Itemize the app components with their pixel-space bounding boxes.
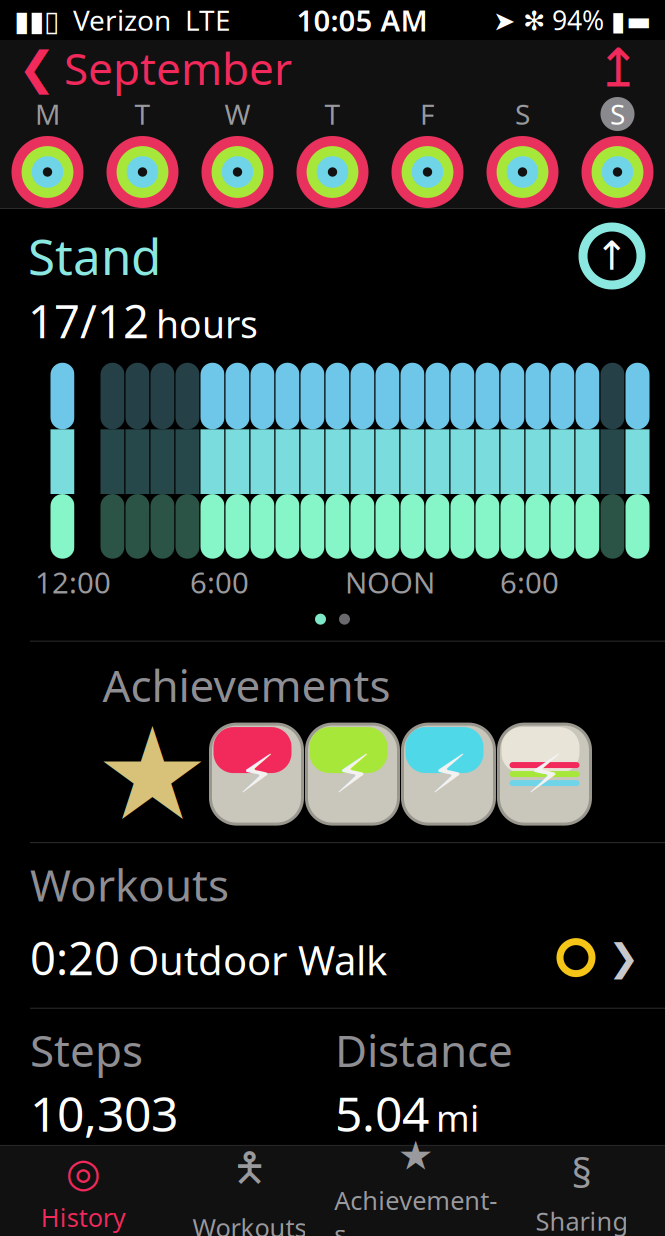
staticText: ➤ ✻ 94% ▮▬ (493, 2, 651, 38)
button[interactable]: ❮ (0, 33, 292, 103)
staticText: 6:00 (190, 563, 249, 602)
staticText: Achievements (334, 1183, 497, 1236)
button[interactable]: T (285, 92, 380, 212)
button[interactable]: § (499, 1136, 665, 1236)
staticText: Distance (335, 1021, 513, 1079)
button[interactable]: S (475, 92, 570, 212)
staticText: ⚡︎ (430, 744, 467, 804)
staticText: Outdoor Walk (128, 933, 387, 986)
staticText: ★ (398, 1133, 434, 1178)
staticText: 17/12 (28, 290, 149, 351)
staticText: ↑ (595, 233, 629, 279)
button[interactable]: Perfect week achievement (496, 722, 592, 826)
button[interactable]: Share (596, 34, 665, 102)
staticText: Steps (30, 1021, 143, 1079)
staticText: Achievements (102, 656, 390, 714)
button[interactable]: W (190, 92, 285, 212)
staticText: S (515, 95, 530, 133)
staticText: W (224, 95, 250, 133)
staticText: 10,303 (30, 1081, 178, 1145)
button[interactable]: ★ (332, 1123, 499, 1236)
staticText: History (41, 1200, 126, 1234)
button[interactable]: T (95, 92, 190, 212)
button[interactable]: ◎ (0, 1140, 166, 1236)
staticText: 12:00 (35, 563, 111, 602)
staticText: 10:05 AM (296, 0, 427, 39)
staticText: M (35, 95, 60, 133)
staticText: 5.04 (335, 1081, 429, 1145)
button[interactable]: 🯅 (166, 1129, 332, 1236)
staticText: ❯ (608, 936, 639, 979)
button[interactable]: Star achievement (96, 722, 208, 826)
button[interactable]: F (380, 92, 475, 212)
staticText: ↥ (596, 38, 641, 98)
staticText: ★ (95, 701, 210, 847)
staticText: ◎ (66, 1150, 101, 1195)
staticText: § (571, 1146, 592, 1199)
staticText: ▮▮▯ Verizon LTE (14, 1, 231, 39)
staticText: Workouts (192, 1211, 306, 1236)
staticText: T (324, 95, 340, 133)
button[interactable]: 0:20 (0, 913, 665, 1002)
staticText: hours (156, 299, 258, 348)
staticText: September (64, 39, 292, 97)
staticText: Sharing (535, 1204, 628, 1236)
button[interactable]: Exercise goal achievement (304, 722, 400, 826)
button[interactable]: S (570, 92, 665, 212)
staticText: ⚡︎ (526, 744, 563, 804)
staticText: Stand (28, 223, 161, 288)
staticText: ❮ (18, 42, 56, 94)
staticText: mi (436, 1094, 479, 1142)
button[interactable]: Stand goal achievement (400, 722, 496, 826)
staticText: ⚡︎ (334, 744, 371, 804)
staticText: T (134, 95, 150, 133)
staticText: 🯅 (232, 1139, 267, 1206)
staticText: 0:20 (30, 927, 120, 988)
button[interactable]: M (0, 92, 95, 212)
staticText: NOON (345, 563, 435, 602)
staticText: 6:00 (500, 563, 559, 602)
staticText: F (420, 95, 435, 133)
staticText: Workouts (30, 855, 229, 913)
button[interactable]: Move goal achievement (208, 722, 304, 826)
staticText: ⚡︎ (238, 744, 275, 804)
staticText: S (610, 95, 625, 133)
